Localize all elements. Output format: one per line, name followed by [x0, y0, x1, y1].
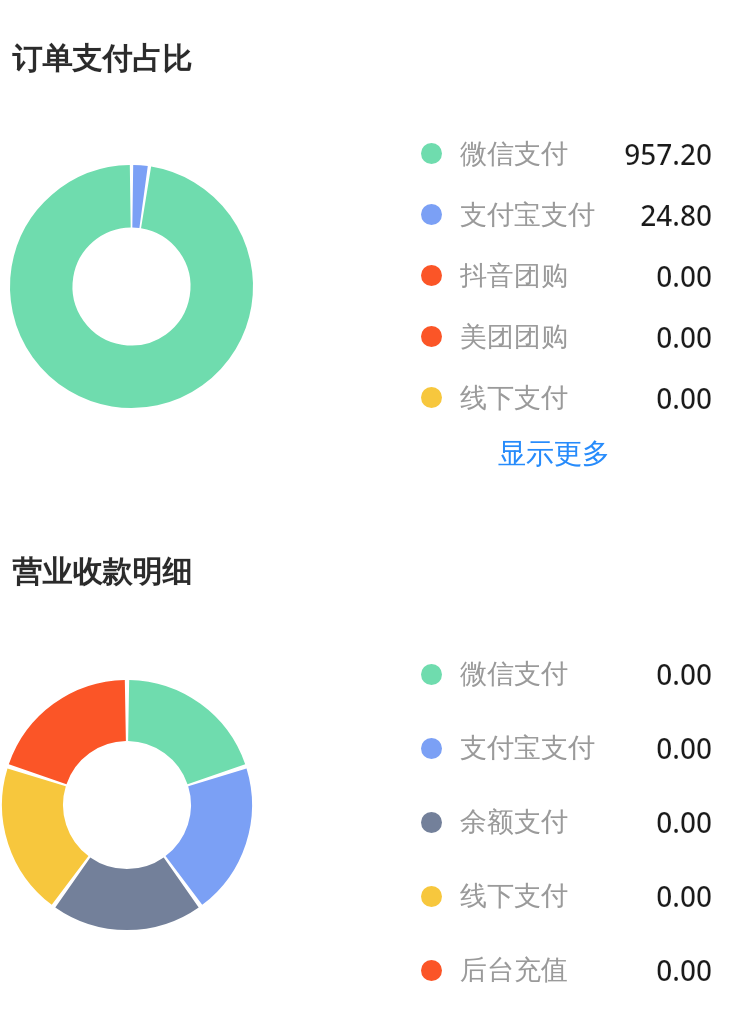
staticText: 0.00 [0, 877, 712, 915]
staticText: 线下支付 [460, 879, 568, 913]
button[interactable]: 美团团购 [0, 306, 730, 367]
staticText: 0.00 [0, 379, 712, 417]
button[interactable]: 线下支付 [0, 859, 730, 933]
staticText: 抖音团购 [460, 259, 568, 293]
button[interactable]: 显示更多 [494, 432, 614, 475]
staticText: 微信支付 [460, 137, 568, 171]
staticText: 0.00 [0, 318, 712, 356]
button[interactable]: 微信支付 [0, 637, 730, 711]
button[interactable]: 余额支付 [0, 785, 730, 859]
staticText: 微信支付 [460, 657, 568, 691]
staticText: 957.20 [0, 135, 712, 173]
staticText: 0.00 [0, 729, 712, 767]
staticText: 后台充值 [460, 953, 568, 987]
button[interactable]: 支付宝支付 [0, 711, 730, 785]
staticText: 24.80 [0, 196, 712, 234]
staticText: 美团团购 [460, 320, 568, 354]
button[interactable]: 线下支付 [0, 367, 730, 428]
staticText: 线下支付 [460, 381, 568, 415]
button[interactable]: 微信支付 [0, 123, 730, 184]
button[interactable]: 抖音团购 [0, 245, 730, 306]
staticText: 支付宝支付 [460, 198, 595, 232]
button[interactable]: 后台充值 [0, 933, 730, 1007]
button[interactable]: 支付宝支付 [0, 184, 730, 245]
staticText: 支付宝支付 [460, 731, 595, 765]
staticText: 显示更多 [498, 436, 610, 471]
staticText: 0.00 [0, 257, 712, 295]
staticText: 订单支付占比 [12, 40, 192, 78]
staticText: 0.00 [0, 655, 712, 693]
staticText: 0.00 [0, 951, 712, 989]
staticText: 营业收款明细 [12, 553, 192, 591]
staticText: 0.00 [0, 803, 712, 841]
staticText: 余额支付 [460, 805, 568, 839]
